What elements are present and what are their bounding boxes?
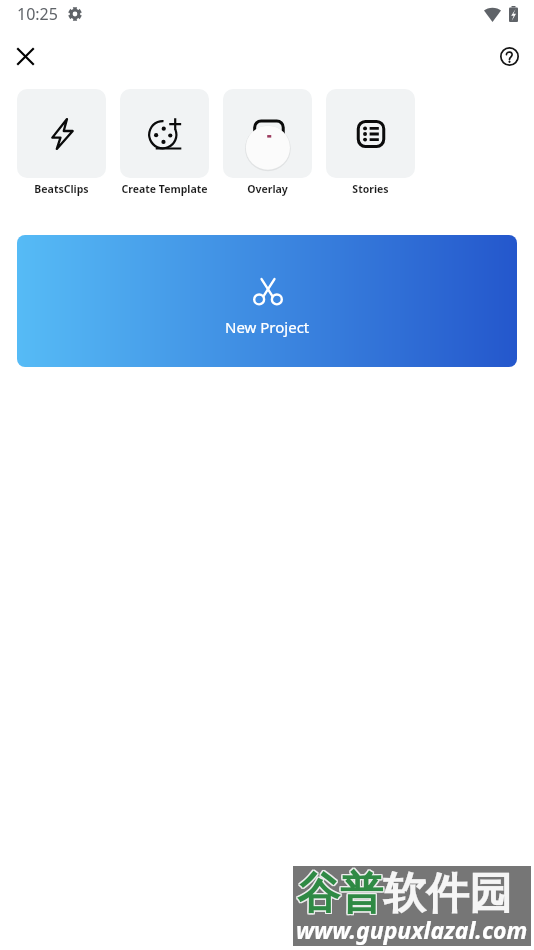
staticText: 谷普 bbox=[298, 867, 384, 921]
button[interactable]: Stories bbox=[326, 89, 415, 196]
button[interactable]: Help bbox=[489, 36, 529, 76]
staticText: New Project bbox=[225, 317, 310, 337]
staticText: 谷普 bbox=[296, 866, 382, 920]
staticText: 谷普 bbox=[297, 868, 383, 922]
staticText: www.gupuxlazal.com bbox=[296, 914, 528, 945]
button[interactable]: Create Template bbox=[120, 89, 209, 196]
staticText: 软件园 bbox=[384, 866, 513, 920]
button[interactable]: New Project bbox=[17, 235, 517, 367]
staticText: 谷普 bbox=[296, 868, 382, 922]
staticText: 谷普 bbox=[298, 868, 384, 922]
staticText: 谷普 bbox=[297, 866, 383, 920]
staticText: 谷普 bbox=[296, 867, 382, 921]
staticText: 软件园 bbox=[384, 868, 513, 922]
button[interactable]: Close bbox=[5, 36, 45, 76]
staticText: 软件园 bbox=[382, 868, 511, 922]
staticText: 软件园 bbox=[384, 867, 513, 921]
staticText: Stories bbox=[352, 182, 389, 196]
staticText: 软件园 bbox=[383, 867, 512, 921]
button[interactable]: Overlay bbox=[223, 89, 312, 196]
button[interactable]: BeatsClips bbox=[17, 89, 106, 196]
staticText: 软件园 bbox=[383, 866, 512, 920]
staticText: 软件园 bbox=[382, 866, 511, 920]
staticText: 10:25 bbox=[17, 3, 58, 25]
staticText: Create Template bbox=[121, 182, 208, 196]
staticText: 软件园 bbox=[382, 867, 511, 921]
staticText: Overlay bbox=[247, 182, 288, 196]
staticText: 软件园 bbox=[383, 868, 512, 922]
staticText: 谷普 bbox=[298, 866, 384, 920]
staticText: BeatsClips bbox=[34, 182, 89, 196]
staticText: 谷普 bbox=[297, 867, 383, 921]
